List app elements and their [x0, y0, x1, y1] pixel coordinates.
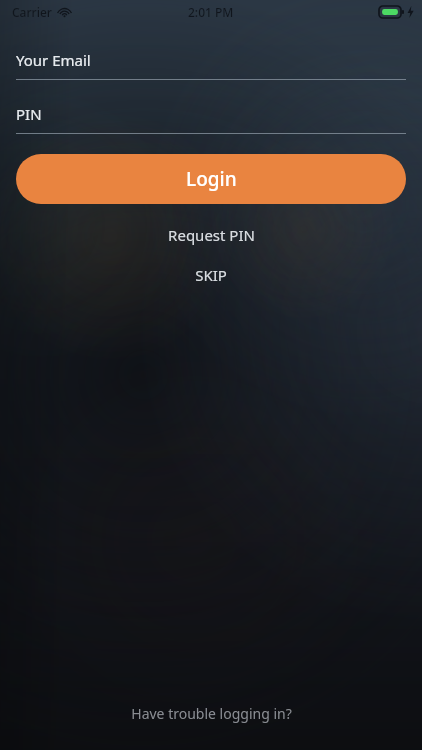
staticText: Request PIN: [168, 225, 255, 245]
staticText: Your Email: [16, 50, 91, 70]
staticText: Have trouble logging in?: [131, 704, 292, 723]
staticText: 2:01 PM: [188, 4, 234, 20]
button[interactable]: Login: [16, 154, 406, 204]
staticText: PIN: [16, 104, 42, 124]
button[interactable]: Your Email: [16, 26, 406, 80]
staticText: Login: [186, 166, 237, 192]
button[interactable]: PIN: [16, 80, 406, 134]
button[interactable]: SKIP: [0, 258, 422, 292]
staticText: SKIP: [195, 265, 227, 285]
button[interactable]: Have trouble logging in?: [0, 696, 422, 731]
staticText: Carrier: [12, 4, 52, 20]
button[interactable]: Request PIN: [0, 218, 422, 252]
